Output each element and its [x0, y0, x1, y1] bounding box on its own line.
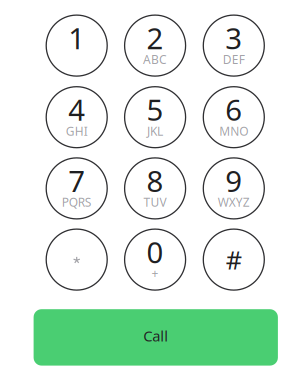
- button[interactable]: 2: [125, 15, 186, 76]
- button[interactable]: 3: [203, 15, 264, 76]
- staticText: DEF: [223, 51, 245, 67]
- staticText: MNO: [219, 123, 248, 139]
- button[interactable]: 0: [125, 229, 186, 290]
- button[interactable]: 7: [46, 158, 107, 219]
- staticText: Call: [143, 326, 168, 346]
- staticText: 5: [147, 90, 164, 129]
- button[interactable]: #: [203, 229, 264, 290]
- staticText: JKL: [147, 123, 163, 139]
- button[interactable]: 6: [203, 87, 264, 148]
- staticText: 3: [225, 18, 242, 57]
- staticText: 2: [147, 18, 164, 57]
- button[interactable]: 1: [46, 15, 107, 76]
- staticText: 8: [147, 161, 164, 200]
- staticText: 0: [147, 232, 164, 271]
- staticText: 4: [68, 90, 85, 129]
- button[interactable]: 5: [125, 87, 186, 148]
- staticText: 9: [225, 161, 242, 200]
- button[interactable]: Call: [34, 309, 278, 366]
- button[interactable]: 8: [125, 158, 186, 219]
- button[interactable]: 9: [203, 158, 264, 219]
- button[interactable]: star: [46, 229, 107, 290]
- staticText: #: [226, 243, 242, 276]
- staticText: GHI: [66, 123, 88, 139]
- staticText: TUV: [144, 194, 167, 210]
- staticText: ABC: [143, 51, 167, 67]
- staticText: 6: [225, 90, 242, 129]
- staticText: 1: [68, 18, 85, 57]
- staticText: WXYZ: [218, 194, 250, 210]
- staticText: PQRS: [62, 194, 92, 210]
- button[interactable]: 4: [46, 87, 107, 148]
- staticText: 7: [68, 161, 85, 200]
- staticText: +: [152, 265, 159, 281]
